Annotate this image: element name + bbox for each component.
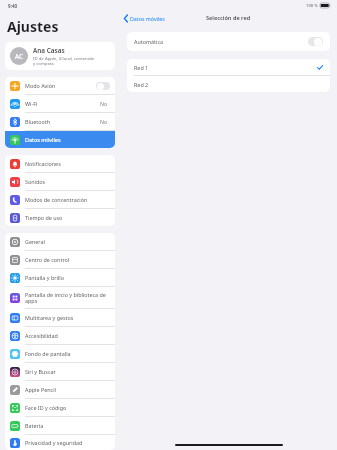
button[interactable]: Red 1 [127,59,330,75]
staticText: Privacidad y seguridad [25,439,110,446]
staticText: 9:40 [8,3,18,9]
staticText: Datos móviles [25,136,110,143]
staticText: Batería [25,422,110,429]
staticText: Red 2 [134,81,149,88]
staticText: Datos móviles [130,15,165,22]
staticText: General [25,238,110,245]
staticText: Accesibilidad [25,332,110,339]
staticText: Wi-Fi [25,100,100,107]
button[interactable]: Red 2 [127,76,330,92]
button[interactable]: General [5,233,115,250]
staticText: Centro de control [25,256,110,263]
button[interactable]: Centro de control [5,251,115,268]
button[interactable]: Datos móviles [5,131,115,148]
staticText: AC [15,52,23,60]
button[interactable]: Automática [308,37,323,46]
button[interactable]: Accesibilidad [5,327,115,344]
button[interactable]: Wi-Fi [5,95,115,112]
button[interactable]: AC [5,42,115,70]
staticText: 100 % [306,3,318,9]
button[interactable]: Datos móviles [120,13,169,24]
staticText: Siri y Buscar [25,368,110,375]
staticText: Selección de red [206,14,251,22]
staticText: Face ID y código [25,404,110,411]
button[interactable]: Batería [5,417,115,434]
button[interactable]: Modo Avión [5,77,115,94]
staticText: Fondo de pantalla [25,350,110,357]
button[interactable]: Tiempo de uso [5,209,115,226]
staticText: Bluetooth [25,118,100,125]
button[interactable]: Privacidad y seguridad [5,435,115,450]
button[interactable]: Modo Avión [96,82,110,90]
staticText: Sonidos [25,178,110,185]
staticText: Tiempo de uso [25,214,110,221]
button[interactable]: Modos de concentración [5,191,115,208]
button[interactable]: Bluetooth [5,113,115,130]
button[interactable]: Pantalla y brillo [5,269,115,286]
staticText: Modo Avión [25,82,96,89]
staticText: Pantalla y brillo [25,274,110,281]
staticText: No [100,100,108,107]
staticText: ID de Apple, iCloud, contenido y compras [33,55,95,66]
button[interactable]: Multitarea y gestos [5,309,115,326]
staticText: Ajustes [7,17,59,36]
button[interactable]: Sonidos [5,173,115,190]
button[interactable]: Face ID y código [5,399,115,416]
staticText: No [100,118,108,125]
staticText: Multitarea y gestos [25,314,110,321]
staticText: Pantalla de inicio y biblioteca de apps [25,291,110,305]
staticText: Modos de concentración [25,196,110,203]
staticText: Automática [134,38,308,45]
staticText: Ana Casas [33,46,65,55]
staticText: Notificaciones [25,160,110,167]
button[interactable]: Siri y Buscar [5,363,115,380]
staticText: Red 1 [134,64,317,71]
button[interactable]: Apple Pencil [5,381,115,398]
button[interactable]: Pantalla de inicio y biblioteca de apps [5,287,115,308]
button[interactable]: Automática [127,32,330,51]
button[interactable]: Fondo de pantalla [5,345,115,362]
staticText: Apple Pencil [25,386,110,393]
button[interactable]: Notificaciones [5,155,115,172]
